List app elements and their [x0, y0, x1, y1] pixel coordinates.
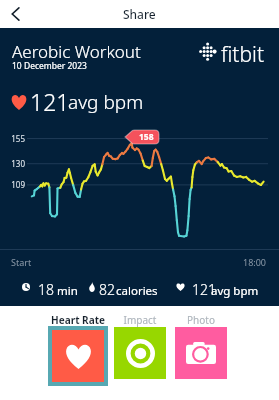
staticText: fitbit [221, 40, 265, 69]
staticText: 109 [3, 179, 25, 190]
button[interactable]: Photo [175, 327, 227, 379]
staticText: Impact [114, 313, 166, 327]
staticText: avg bpm [68, 89, 144, 115]
staticText: 121 [30, 86, 70, 117]
staticText: Photo [175, 313, 227, 327]
staticText: calories [116, 283, 158, 299]
staticText: 82 [99, 280, 115, 299]
staticText: 10 December 2023 [12, 60, 87, 72]
staticText: Start [11, 256, 32, 268]
staticText: 121 [192, 280, 216, 299]
staticText: 18:00 [243, 256, 267, 268]
button[interactable]: Back [3, 2, 27, 26]
staticText: avg bpm [211, 283, 259, 299]
staticText: 130 [3, 158, 25, 169]
staticText: Heart Rate [48, 313, 108, 327]
staticText: 18 [38, 280, 54, 299]
staticText: 158 [139, 131, 154, 143]
button[interactable]: Impact [114, 327, 166, 379]
button[interactable]: Heart Rate [52, 330, 104, 382]
staticText: min [57, 283, 78, 299]
staticText: Aerobic Workout [12, 40, 141, 63]
staticText: Share [123, 6, 156, 22]
staticText: 155 [3, 133, 25, 144]
